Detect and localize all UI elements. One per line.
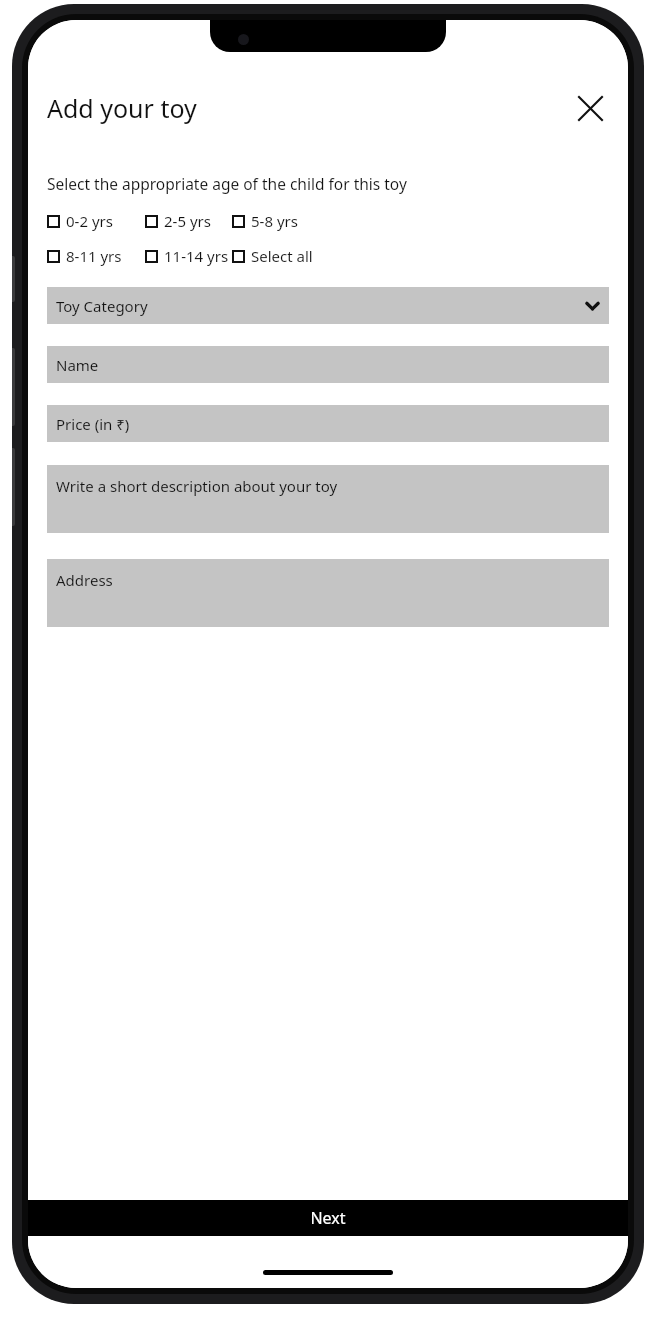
staticText: 2-5 yrs — [164, 211, 211, 231]
staticText: 0-2 yrs — [66, 211, 113, 231]
button[interactable]: 0-2 yrs — [47, 208, 113, 234]
button[interactable]: Price (in ₹) — [47, 405, 609, 442]
staticText: 8-11 yrs — [66, 246, 122, 266]
staticText: Price (in ₹) — [56, 414, 130, 434]
staticText: Name — [56, 355, 99, 375]
staticText: Address — [56, 570, 113, 590]
staticText: Select the appropriate age of the child … — [47, 173, 407, 194]
button[interactable]: 2-5 yrs — [145, 208, 211, 234]
staticText: Add your toy — [47, 91, 197, 125]
button[interactable]: Next — [28, 1200, 628, 1236]
button[interactable]: Name — [47, 346, 609, 383]
staticText: Next — [310, 1207, 346, 1229]
button[interactable]: 11-14 yrs — [145, 243, 229, 269]
button[interactable]: Close — [568, 86, 612, 130]
staticText: 5-8 yrs — [251, 211, 298, 231]
staticText: Write a short description about your toy — [56, 476, 338, 496]
staticText: 11-14 yrs — [164, 246, 229, 266]
staticText: Select all — [251, 246, 313, 266]
button[interactable]: Select all — [232, 243, 313, 269]
button[interactable]: 8-11 yrs — [47, 243, 122, 269]
button[interactable]: 5-8 yrs — [232, 208, 298, 234]
button[interactable]: Address — [47, 559, 609, 627]
button[interactable]: Write a short description about your toy — [47, 465, 609, 533]
staticText: Toy Category — [56, 296, 148, 316]
button[interactable]: Toy Category — [47, 287, 609, 324]
